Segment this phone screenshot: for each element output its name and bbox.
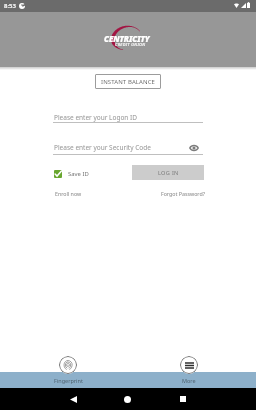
button[interactable]: INSTANT BALANCE [95, 74, 161, 89]
staticText: 8:53 [4, 2, 16, 10]
staticText: LOG IN [158, 169, 179, 177]
button[interactable]: Enroll now [55, 190, 82, 197]
staticText: CENTRICITY [104, 33, 150, 44]
button[interactable]: LOG IN [132, 165, 204, 180]
staticText: Please enter your Logon ID [54, 113, 138, 122]
staticText: Save ID [68, 170, 89, 178]
staticText: More [182, 377, 196, 384]
button[interactable]: More [163, 354, 215, 386]
staticText: CREDIT UNION [115, 42, 146, 47]
button[interactable]: Show security code [186, 140, 202, 156]
button[interactable]: Home [111, 388, 144, 410]
staticText: INSTANT BALANCE [101, 78, 155, 86]
button[interactable]: Recents [166, 388, 199, 410]
button[interactable]: Save ID [54, 167, 89, 180]
staticText: Fingerprint [54, 377, 83, 384]
button[interactable]: Back [57, 388, 89, 410]
staticText: Forgot Password? [143, 190, 205, 197]
button[interactable]: Fingerprint login [42, 354, 94, 386]
button[interactable]: Forgot Password? [143, 190, 205, 197]
staticText: Please enter your Security Code [54, 143, 151, 152]
